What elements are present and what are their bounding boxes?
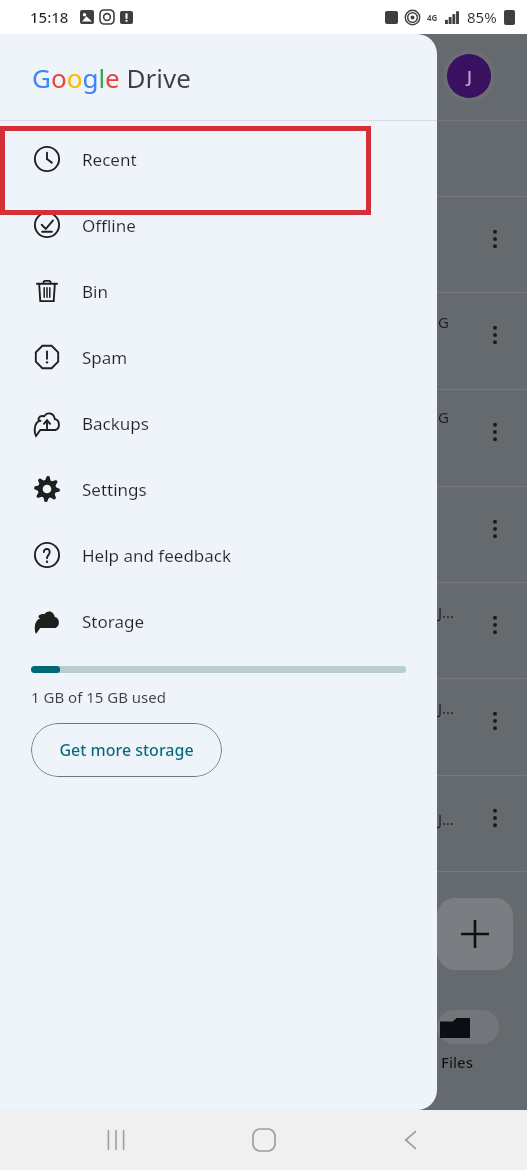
staticText: Help and feedback xyxy=(82,544,232,567)
button[interactable]: Backups xyxy=(0,390,437,456)
button[interactable] xyxy=(437,1010,499,1044)
staticText: Recent xyxy=(82,148,137,171)
button[interactable]: Recent apps xyxy=(84,1110,148,1170)
staticText: Bin xyxy=(82,280,108,303)
button[interactable]: Home xyxy=(232,1110,296,1170)
staticText: Settings xyxy=(82,478,147,501)
staticText: 1 GB of 15 GB used xyxy=(31,687,166,707)
staticText: 85% xyxy=(467,7,497,27)
button[interactable]: Storage xyxy=(0,588,437,654)
staticText: Google Drive xyxy=(32,60,191,95)
staticText: Offline xyxy=(82,214,136,237)
staticText: Storage xyxy=(82,610,145,633)
button[interactable]: Bin xyxy=(0,258,437,324)
button[interactable]: Back xyxy=(379,1110,443,1170)
staticText: G xyxy=(438,312,449,332)
staticText: Spam xyxy=(82,346,128,369)
staticText: 15:18 xyxy=(30,7,69,27)
staticText: J… xyxy=(438,698,454,718)
staticText: Backups xyxy=(82,412,149,435)
button[interactable]: Spam xyxy=(0,324,437,390)
button[interactable]: Offline xyxy=(0,192,437,258)
staticText: G xyxy=(438,407,449,427)
button[interactable]: Help and feedback xyxy=(0,522,437,588)
button[interactable]: Get more storage xyxy=(31,723,222,777)
button[interactable]: Create xyxy=(437,898,513,970)
staticText: Files xyxy=(441,1052,473,1072)
staticText: J… xyxy=(438,809,454,829)
staticText: J… xyxy=(438,602,454,622)
staticText: 4G xyxy=(427,12,438,23)
button[interactable]: Settings xyxy=(0,456,437,522)
staticText: J xyxy=(467,65,472,88)
button[interactable]: Recent xyxy=(0,126,437,192)
staticText: Get more storage xyxy=(59,739,194,761)
